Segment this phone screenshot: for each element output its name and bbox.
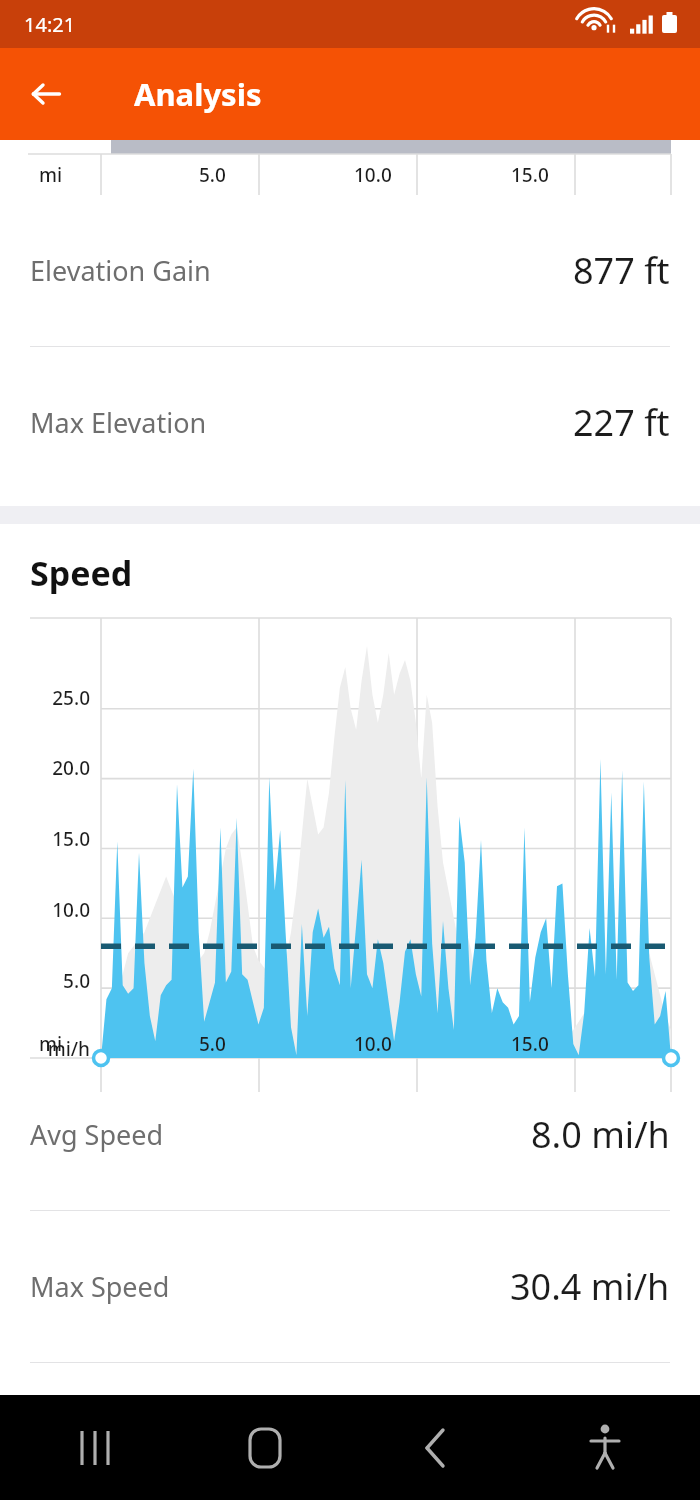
staticText: Speed	[30, 550, 133, 596]
staticText: 5.0	[199, 1031, 226, 1057]
staticText: mi/h	[30, 1036, 90, 1059]
staticText: 5.0	[199, 162, 226, 188]
button[interactable]: Max Elevation	[0, 347, 700, 498]
staticText: 10.0	[30, 897, 90, 923]
staticText: Analysis	[134, 73, 262, 115]
staticText: 15.0	[30, 826, 90, 852]
staticText: 15.0	[511, 1031, 549, 1057]
staticText: Max Elevation	[30, 404, 207, 441]
staticText: 10.0	[354, 1031, 392, 1057]
button[interactable]: Max Speed	[0, 1211, 700, 1362]
button[interactable]: Avg Speed	[0, 1059, 700, 1210]
staticText: mi	[39, 1031, 63, 1057]
staticText: 8.0 mi/h	[531, 1110, 670, 1159]
staticText: 5.0	[30, 968, 90, 994]
staticText: 25.0	[30, 685, 90, 711]
staticText: 10.0	[354, 162, 392, 188]
staticText: 15.0	[511, 162, 549, 188]
staticText: mi	[39, 162, 63, 188]
button[interactable]: Back	[350, 1395, 520, 1500]
staticText: 227 ft	[573, 398, 670, 447]
staticText: 877 ft	[573, 246, 670, 295]
staticText: Elevation Gain	[30, 252, 211, 289]
button[interactable]: Recent apps	[10, 1395, 180, 1500]
button[interactable]: Accessibility	[520, 1395, 690, 1500]
button[interactable]: Home	[180, 1395, 350, 1500]
staticText: 14:21	[24, 11, 76, 38]
staticText: 30.4 mi/h	[510, 1262, 670, 1311]
button[interactable]: Back	[14, 62, 78, 126]
staticText: 20.0	[30, 755, 90, 781]
button[interactable]: Elevation Gain	[0, 195, 700, 346]
staticText: Avg Speed	[30, 1116, 164, 1153]
staticText: Max Speed	[30, 1268, 170, 1305]
